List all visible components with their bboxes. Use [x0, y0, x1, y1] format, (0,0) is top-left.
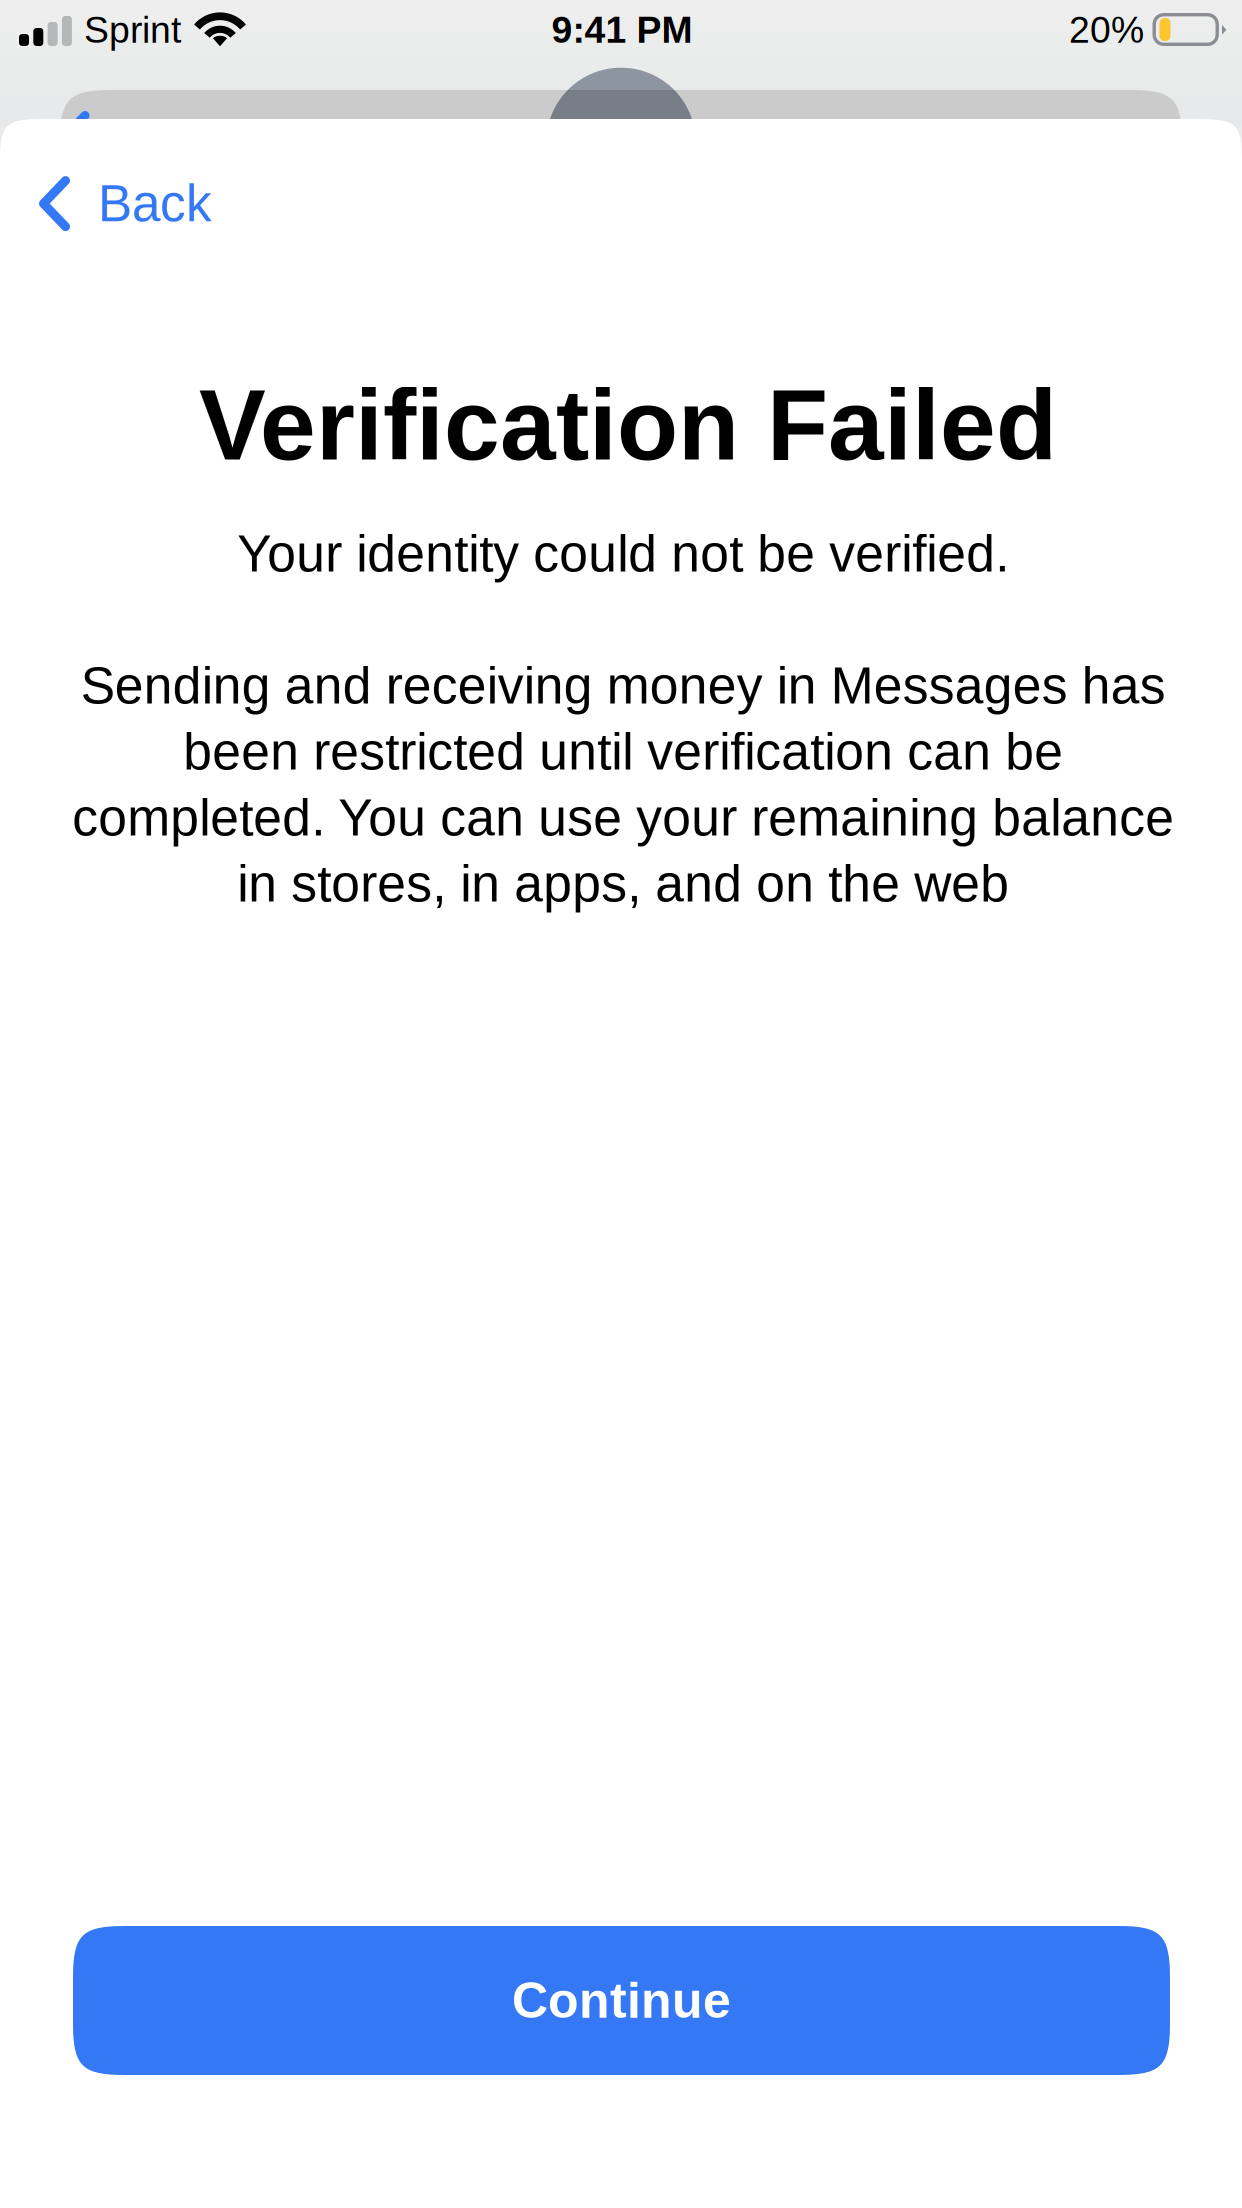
staticText: Continue [512, 1973, 731, 2028]
staticText: Back [98, 175, 212, 232]
staticText: Verification Failed [199, 369, 1057, 481]
button[interactable]: Continue [73, 1926, 1170, 2075]
staticText: 20% [1069, 9, 1144, 51]
staticText: Your identity could not be verified. Sen… [72, 525, 1174, 912]
staticText: 9:41 PM [551, 9, 692, 51]
staticText: Sprint [84, 9, 181, 51]
button[interactable]: Back [0, 151, 244, 256]
